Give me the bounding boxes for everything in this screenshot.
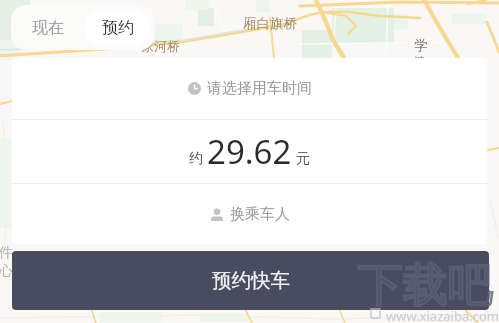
- staticText: www.xiazaiba.com: [386, 307, 499, 323]
- staticText: 换乘车人: [230, 205, 290, 224]
- staticText: 下载吧: [358, 257, 493, 314]
- button[interactable]: 预约: [85, 9, 150, 47]
- staticText: 现在: [32, 18, 64, 38]
- staticText: 预约快车: [212, 268, 290, 293]
- staticText: 预约: [102, 18, 134, 38]
- button[interactable]: 换乘车人: [12, 184, 487, 244]
- button[interactable]: 现在: [11, 5, 85, 50]
- staticText: 29.62: [207, 129, 292, 174]
- staticText: 件: [0, 244, 13, 262]
- staticText: 学: [414, 37, 428, 55]
- staticText: 家河桥: [141, 38, 180, 54]
- button[interactable]: 预约快车: [12, 251, 489, 310]
- staticText: 心: [0, 262, 13, 280]
- staticText: 元: [296, 150, 310, 168]
- staticText: 请选择用车时间: [207, 79, 312, 98]
- button[interactable]: 请选择用车时间: [12, 58, 487, 119]
- staticText: 津: [414, 54, 426, 69]
- staticText: 约: [189, 150, 203, 168]
- staticText: 厢白旗桥: [243, 15, 297, 32]
